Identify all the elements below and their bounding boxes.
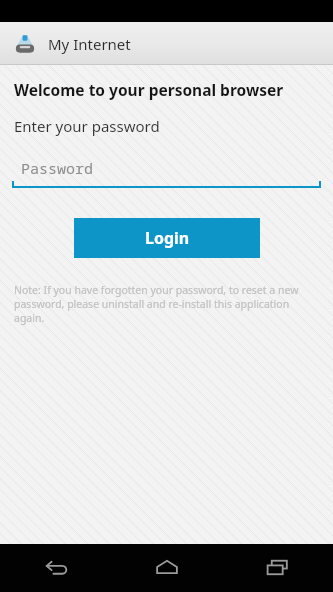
button[interactable]: Back [0,544,111,592]
staticText: Welcome to your personal browser [14,79,284,100]
staticText: Note: If you have forgotten your passwor… [14,283,303,325]
staticText: Login [145,227,190,249]
button[interactable]: Recent apps [222,544,333,592]
button[interactable]: Login [74,218,260,258]
button[interactable]: Home [111,544,222,592]
staticText: Enter your password [14,116,160,136]
staticText: My Internet [48,34,131,54]
button[interactable]: Password [12,157,321,189]
staticText: Password [21,158,94,178]
